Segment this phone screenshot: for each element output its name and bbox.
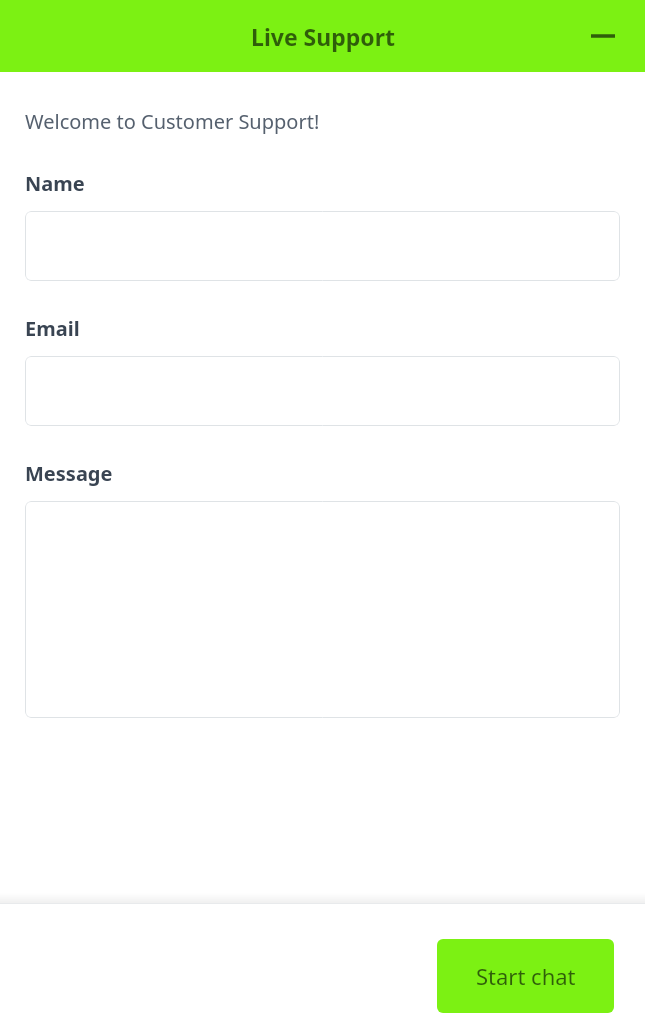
button[interactable]: Minimize	[581, 14, 625, 58]
button[interactable]: Start chat	[437, 939, 614, 1013]
button[interactable]	[25, 211, 620, 281]
staticText: Email	[25, 315, 80, 342]
staticText: Welcome to Customer Support!	[25, 108, 320, 135]
button[interactable]	[25, 356, 620, 426]
button[interactable]	[25, 501, 620, 718]
staticText: Live Support	[251, 21, 395, 52]
staticText: Start chat	[476, 961, 576, 991]
staticText: Name	[25, 170, 85, 197]
staticText: Message	[25, 460, 113, 487]
